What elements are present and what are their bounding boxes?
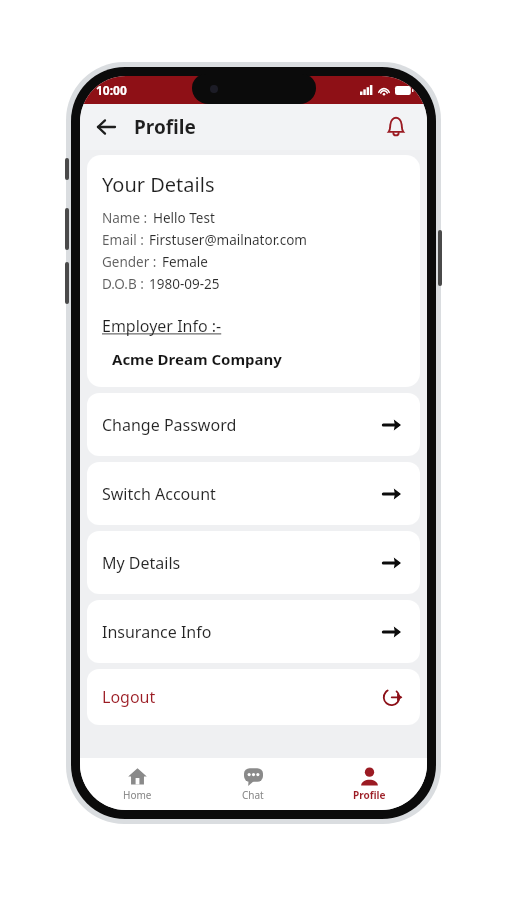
staticText: Switch Account (102, 483, 216, 505)
staticText: Your Details (102, 171, 215, 198)
staticText: Profile (134, 114, 196, 140)
staticText: 1980-09-25 (149, 275, 220, 293)
button[interactable]: Home (80, 758, 195, 810)
staticText: Hello Test (153, 209, 215, 227)
button[interactable]: Logout (87, 669, 420, 725)
staticText: My Details (102, 552, 181, 574)
staticText: Female (162, 253, 208, 271)
staticText: Firstuser@mailnator.com (149, 231, 307, 249)
button[interactable]: Profile (311, 758, 427, 810)
staticText: Home (123, 788, 152, 802)
button[interactable]: Switch Account (87, 462, 420, 525)
staticText: Name : (102, 209, 148, 227)
button[interactable]: Notifications (379, 110, 413, 144)
staticText: Employer Info :- (102, 315, 222, 337)
staticText: 10:00 (96, 82, 127, 98)
staticText: Profile (353, 788, 386, 802)
button[interactable]: Back (88, 109, 124, 145)
button[interactable]: Insurance Info (87, 600, 420, 663)
staticText: Logout (102, 686, 156, 708)
staticText: Gender : (102, 253, 157, 271)
staticText: Change Password (102, 414, 237, 436)
button[interactable]: Chat (195, 758, 311, 810)
staticText: Insurance Info (102, 621, 212, 643)
staticText: Email : (102, 231, 144, 249)
button[interactable]: Change Password (87, 393, 420, 456)
staticText: Chat (242, 788, 264, 802)
button[interactable]: My Details (87, 531, 420, 594)
staticText: D.O.B : (102, 275, 144, 293)
staticText: Acme Dream Company (112, 349, 282, 369)
